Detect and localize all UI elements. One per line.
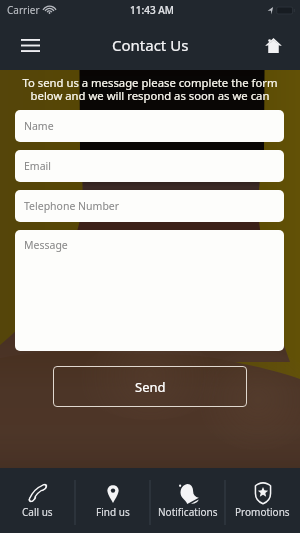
staticText: Call us xyxy=(22,505,53,519)
button[interactable]: Notifications xyxy=(150,468,225,533)
staticText: Carrier xyxy=(7,3,40,17)
button[interactable]: Send xyxy=(53,366,247,407)
button[interactable]: Promotions xyxy=(225,468,300,533)
button[interactable]: Call us xyxy=(0,468,75,533)
staticText: Message xyxy=(24,238,68,252)
staticText: Send xyxy=(135,378,166,396)
button[interactable]: Home xyxy=(255,27,291,63)
staticText: Find us xyxy=(96,505,130,519)
staticText: Notifications xyxy=(158,505,218,519)
button[interactable]: Email xyxy=(15,150,284,182)
button[interactable]: Find us xyxy=(75,468,150,533)
button[interactable]: Telephone Number xyxy=(15,190,284,222)
button[interactable]: Message xyxy=(15,230,284,351)
button[interactable]: Name xyxy=(15,110,284,142)
staticText: Contact Us xyxy=(112,35,189,55)
staticText: To send us a message please complete the… xyxy=(4,75,296,104)
staticText: 11:43 AM xyxy=(130,3,174,17)
staticText: Telephone Number xyxy=(24,199,120,213)
button[interactable]: Menu xyxy=(12,27,48,63)
staticText: Promotions xyxy=(235,505,290,519)
staticText: Email xyxy=(24,159,51,173)
staticText: Name xyxy=(24,119,54,133)
